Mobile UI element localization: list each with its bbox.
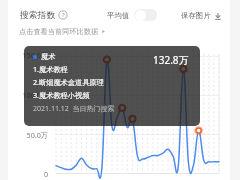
staticText: 平均值 <box>107 11 130 20</box>
button[interactable]: 平均值开关 <box>134 9 157 21</box>
button[interactable]: 保存图片 <box>181 11 225 20</box>
staticText: 100.0万 <box>8 90 48 100</box>
staticText: 2021.11.12 当日热门搜索 <box>33 104 115 114</box>
staticText: 点击查看当前同环比数据 <box>19 27 99 36</box>
button[interactable]: 说明 <box>58 10 68 20</box>
staticText: ? <box>62 11 65 19</box>
staticText: 132.8万 <box>153 53 189 67</box>
staticText: 1.魔术教程 <box>33 64 68 74</box>
staticText: 3.魔术教程小视频 <box>33 90 90 100</box>
staticText: 150.0万 <box>8 50 48 60</box>
staticText: 搜索指数 <box>20 10 56 21</box>
staticText: 2.断烟魔术盒道具原理 <box>33 77 104 87</box>
staticText: 保存图片 <box>181 11 211 20</box>
button[interactable]: 点击查看当前同环比数据 <box>19 27 106 36</box>
staticText: 50.0万 <box>8 130 48 140</box>
staticText: 0 <box>8 169 48 179</box>
staticText: 魔术 <box>41 52 56 61</box>
